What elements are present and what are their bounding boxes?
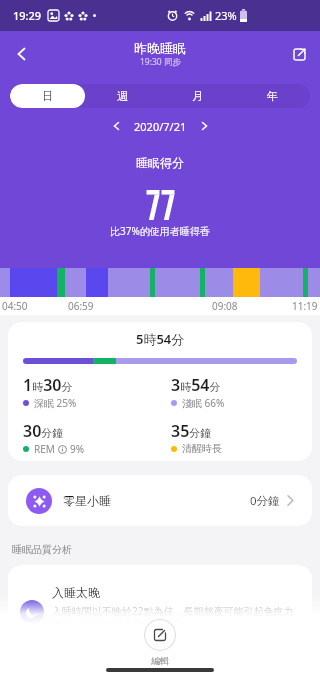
button[interactable]: 週 [85, 84, 160, 108]
staticText: 昨晚睡眠 [134, 40, 186, 56]
button[interactable]: 零星小睡 [8, 475, 312, 526]
button[interactable]: 年 [235, 84, 310, 108]
staticText: 23% [215, 8, 237, 23]
staticText: 35分鐘 [171, 420, 212, 442]
staticText: REM [34, 442, 55, 456]
staticText: 睡眠品質分析 [12, 543, 72, 556]
staticText: 月 [192, 89, 203, 103]
staticText: 年 [267, 89, 278, 103]
staticText: 深眠 25% [34, 396, 77, 410]
button[interactable] [284, 39, 314, 69]
staticText: 9% [70, 442, 85, 456]
staticText: 編輯 [151, 655, 169, 666]
staticText: 1時30分 [23, 374, 73, 396]
staticText: 19:29 [13, 8, 42, 23]
staticText: 3時54分 [171, 374, 221, 396]
staticText: 清醒時長 [182, 442, 222, 455]
staticText: 30分鐘 [23, 420, 64, 442]
staticText: 睡眠得分 [136, 155, 184, 170]
button[interactable] [6, 38, 38, 70]
staticText: 0分鐘 [250, 493, 280, 509]
staticText: 11:19 [292, 299, 318, 313]
staticText: 日 [42, 89, 53, 103]
staticText: 淺眠 66% [182, 396, 225, 410]
button[interactable]: 入睡太晚 [8, 565, 312, 676]
button[interactable]: 日 [10, 84, 85, 108]
button[interactable] [144, 619, 176, 651]
staticText: 2020/7/21 [134, 119, 187, 134]
staticText: 入睡時間以不晚於22點為佳，長期熬夜可能引起免疫力低落、記憶力減退等健康問題。 [52, 604, 300, 631]
staticText: 入睡太晚 [52, 585, 100, 600]
button[interactable]: 月 [160, 84, 235, 108]
button[interactable] [109, 118, 125, 134]
staticText: 比37%的使用者睡得香 [110, 224, 210, 238]
staticText: 5時54分 [136, 330, 185, 348]
staticText: 06:59 [68, 299, 94, 313]
staticText: 零星小睡 [63, 493, 111, 508]
staticText: 09:08 [212, 299, 238, 313]
button[interactable] [196, 118, 212, 134]
staticText: 週 [117, 89, 128, 103]
staticText: 19:30 同步 [140, 56, 181, 68]
staticText: 04:50 [2, 299, 28, 313]
